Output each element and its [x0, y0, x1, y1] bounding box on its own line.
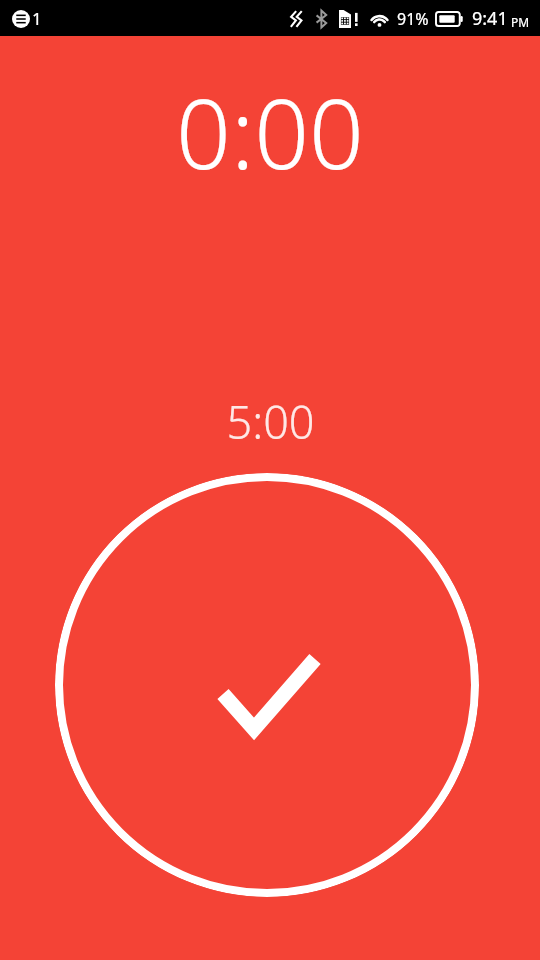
- staticText: 0:00: [176, 66, 364, 197]
- staticText: PM: [511, 14, 530, 30]
- staticText: 5:00: [226, 391, 315, 452]
- button[interactable]: 5:00: [0, 391, 540, 452]
- staticText: 91%: [397, 8, 429, 30]
- staticText: 9:41: [472, 6, 508, 31]
- staticText: 1: [32, 7, 42, 30]
- button[interactable]: Start timer: [55, 473, 479, 897]
- button[interactable]: 0:00: [0, 66, 540, 197]
